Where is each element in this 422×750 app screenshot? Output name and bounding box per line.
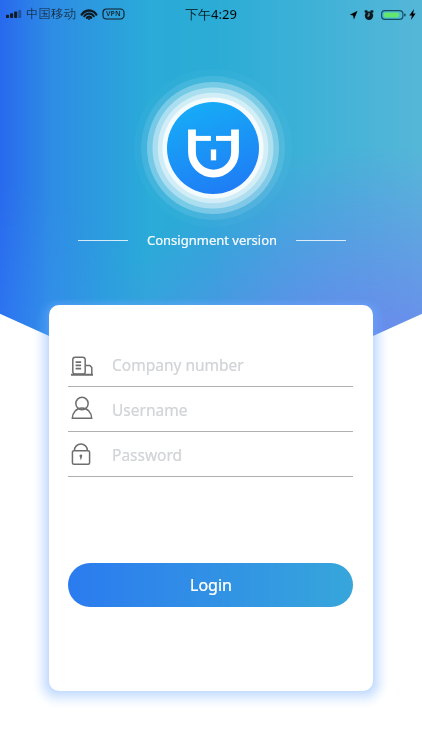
button[interactable]: Company number bbox=[68, 342, 353, 387]
staticText: VPN bbox=[106, 9, 121, 19]
staticText: Consignment version bbox=[147, 231, 278, 249]
button[interactable]: Username bbox=[68, 387, 353, 432]
staticText: Login bbox=[190, 574, 232, 596]
staticText: 中国移动 bbox=[26, 6, 76, 22]
button[interactable]: Login bbox=[68, 563, 353, 607]
staticText: Username bbox=[112, 399, 188, 420]
staticText: 下午4:29 bbox=[185, 5, 237, 23]
staticText: Company number bbox=[112, 354, 244, 375]
staticText: Password bbox=[112, 444, 183, 465]
button[interactable]: Password bbox=[68, 432, 353, 477]
